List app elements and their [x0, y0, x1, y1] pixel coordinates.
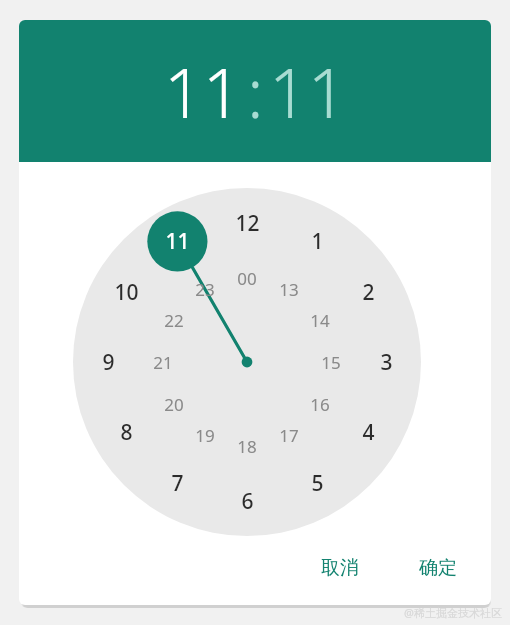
other: Clock face, 11 o'clock selected — [73, 188, 421, 536]
staticText: 23 — [195, 278, 215, 301]
button[interactable]: 18 — [225, 424, 269, 468]
button[interactable]: 1 — [295, 219, 339, 263]
staticText: 6 — [241, 487, 254, 516]
button[interactable]: 00 — [225, 256, 269, 300]
staticText: 取消 — [321, 556, 359, 580]
button[interactable]: 7 — [155, 461, 199, 505]
button[interactable]: 5 — [295, 461, 339, 505]
staticText: 2 — [362, 278, 375, 307]
staticText: 10 — [114, 278, 139, 307]
staticText: 22 — [164, 309, 184, 332]
button[interactable]: 11 — [164, 45, 242, 138]
staticText: 11 — [269, 45, 347, 138]
button[interactable]: 9 — [86, 340, 130, 384]
staticText: 1 — [311, 227, 324, 256]
staticText: 4 — [362, 418, 375, 447]
button[interactable]: 2 — [346, 270, 390, 314]
button[interactable]: 10 — [104, 270, 148, 314]
staticText: 21 — [153, 351, 173, 374]
button[interactable]: 11 — [269, 45, 347, 138]
button[interactable]: 3 — [364, 340, 408, 384]
button[interactable]: 6 — [225, 479, 269, 523]
staticText: 9 — [102, 348, 115, 377]
button[interactable]: 12 — [225, 201, 269, 245]
staticText: 7 — [171, 469, 184, 498]
staticText: 11 — [164, 45, 242, 138]
staticText: 19 — [195, 424, 215, 447]
staticText: : — [247, 45, 264, 138]
staticText: 确定 — [419, 556, 457, 580]
staticText: 00 — [237, 267, 257, 290]
button[interactable]: 15 — [309, 340, 353, 384]
button[interactable]: 13 — [267, 267, 311, 311]
button[interactable]: 20 — [152, 382, 196, 426]
button[interactable]: 23 — [183, 267, 227, 311]
staticText: 12 — [235, 209, 260, 238]
button[interactable]: 8 — [104, 410, 148, 454]
staticText: 18 — [237, 435, 257, 458]
button[interactable]: 取消 — [309, 549, 371, 587]
button[interactable]: 22 — [152, 298, 196, 342]
button[interactable]: 4 — [346, 410, 390, 454]
staticText: 15 — [321, 351, 341, 374]
button[interactable]: 14 — [298, 298, 342, 342]
button[interactable]: 19 — [183, 413, 227, 457]
staticText: 5 — [311, 469, 324, 498]
staticText: 8 — [120, 418, 133, 447]
button[interactable]: 16 — [298, 382, 342, 426]
staticText: 17 — [279, 424, 299, 447]
staticText: @稀土掘金技术社区 — [404, 605, 502, 620]
button[interactable]: 21 — [141, 340, 185, 384]
staticText: 11 — [165, 227, 190, 256]
button[interactable]: 11 — [155, 219, 199, 263]
staticText: 14 — [310, 309, 330, 332]
staticText: 13 — [279, 278, 299, 301]
staticText: 3 — [380, 348, 393, 377]
button[interactable]: 17 — [267, 413, 311, 457]
staticText: 16 — [310, 393, 330, 416]
button[interactable]: 确定 — [407, 549, 469, 587]
staticText: 20 — [164, 393, 184, 416]
